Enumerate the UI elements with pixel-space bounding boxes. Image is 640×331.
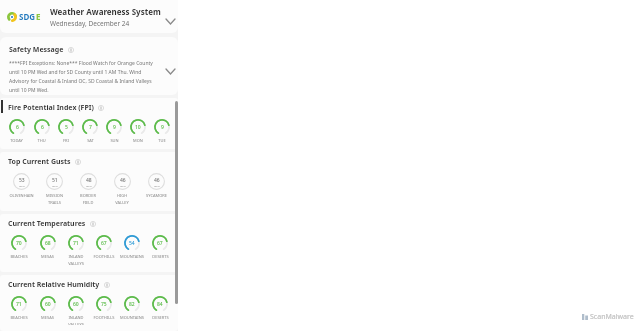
staticText: 6 (41, 124, 44, 131)
button[interactable]: 6 (29, 119, 54, 143)
staticText: 54 (129, 240, 135, 247)
staticText: Wednesday, December 24 (50, 19, 130, 28)
button[interactable]: 53 (5, 173, 38, 198)
staticText: MPH (120, 184, 126, 187)
staticText: BORDER FIELD (80, 193, 96, 205)
button[interactable]: 10 (126, 119, 150, 143)
staticText: 60 (45, 301, 51, 308)
staticText: 51 (52, 177, 58, 184)
staticText: 7 (89, 124, 92, 131)
staticText: BEACHES (10, 315, 28, 320)
staticText: 82 (129, 301, 135, 308)
staticText: Current Relative Humidity (8, 280, 100, 290)
staticText: FOOTHILLS (93, 315, 115, 320)
button[interactable]: 60 (33, 296, 62, 320)
button[interactable]: Safety Message (0, 37, 178, 95)
staticText: 67 (101, 240, 107, 247)
staticText: 67 (157, 240, 163, 247)
staticText: 71 (16, 301, 22, 308)
button[interactable]: 84 (146, 296, 174, 320)
staticText: 10 (135, 124, 141, 131)
staticText: 9 (113, 124, 116, 131)
staticText: SAT (87, 138, 94, 143)
button[interactable]: SDG (0, 0, 178, 33)
staticText: HIGH VALLEY (115, 193, 129, 205)
button[interactable]: 71 (62, 235, 90, 266)
staticText: MON (133, 138, 143, 143)
staticText: 70 (16, 240, 22, 247)
button[interactable]: 7 (78, 119, 102, 143)
staticText: 5 (65, 124, 68, 131)
staticText: 48 (86, 177, 92, 184)
button[interactable]: 67 (90, 235, 118, 259)
button[interactable]: 82 (118, 296, 146, 320)
staticText: 53 (19, 177, 25, 184)
button[interactable]: 54 (118, 235, 146, 259)
button[interactable]: 9 (102, 119, 126, 143)
button[interactable]: 48 (71, 173, 105, 205)
button[interactable]: 70 (4, 235, 33, 259)
button[interactable]: 51 (38, 173, 71, 205)
staticText: THU (37, 138, 46, 143)
staticText: MISSION TRAILS (46, 193, 63, 205)
staticText: SYCAMORE (146, 193, 167, 198)
staticText: 84 (157, 301, 163, 308)
staticText: Top Current Gusts (8, 157, 71, 167)
staticText: E (36, 11, 41, 22)
staticText: Safety Message (9, 45, 64, 55)
staticText: TUE (158, 138, 166, 143)
staticText: MPH (19, 184, 25, 187)
button[interactable]: 46 (139, 173, 173, 198)
staticText: Fire Potential Index (FPI) (8, 103, 94, 113)
staticText: 75 (101, 301, 107, 308)
staticText: 68 (45, 240, 51, 247)
staticText: ScanMalware (590, 312, 634, 322)
button[interactable]: Expand header (161, 12, 179, 30)
button[interactable]: 46 (105, 173, 139, 205)
button[interactable]: 6 (4, 119, 29, 143)
staticText: 60 (73, 301, 79, 308)
staticText: 46 (120, 177, 126, 184)
button[interactable]: 5 (54, 119, 78, 143)
staticText: TODAY (10, 138, 23, 143)
button[interactable]: 75 (90, 296, 118, 320)
staticText: INLAND VALLEYS (68, 254, 84, 266)
staticText: MPH (86, 184, 92, 187)
button[interactable]: Expand safety message (161, 62, 179, 80)
button[interactable]: 71 (4, 296, 33, 320)
staticText: MPH (154, 184, 160, 187)
button[interactable]: 60 (62, 296, 90, 325)
staticText: BEACHES (10, 254, 28, 259)
staticText: 9 (161, 124, 164, 131)
staticText: MOUNTAINS (120, 254, 144, 259)
staticText: MPH (52, 184, 58, 187)
staticText: FOOTHILLS (93, 254, 115, 259)
staticText: Current Temperatures (8, 219, 86, 229)
staticText: INLAND VALLEYS (68, 315, 84, 325)
staticText: SDG (19, 11, 36, 22)
staticText: MESAS (41, 315, 54, 320)
staticText: FRI (63, 138, 69, 143)
button[interactable]: 68 (33, 235, 62, 259)
staticText: DESERTS (152, 315, 169, 320)
staticText: OLIVENHAIN (9, 193, 34, 198)
staticText: MOUNTAINS (120, 315, 144, 320)
button[interactable]: 9 (150, 119, 174, 143)
staticText: DESERTS (152, 254, 169, 259)
staticText: SUN (110, 138, 119, 143)
staticText: Weather Awareness System (50, 6, 161, 17)
staticText: 6 (16, 124, 19, 131)
staticText: MESAS (41, 254, 54, 259)
staticText: 71 (73, 240, 79, 247)
staticText: 46 (154, 177, 160, 184)
staticText: ****FPI Exceptions: None*** Flood Watch … (9, 60, 154, 93)
button[interactable]: 67 (146, 235, 174, 259)
